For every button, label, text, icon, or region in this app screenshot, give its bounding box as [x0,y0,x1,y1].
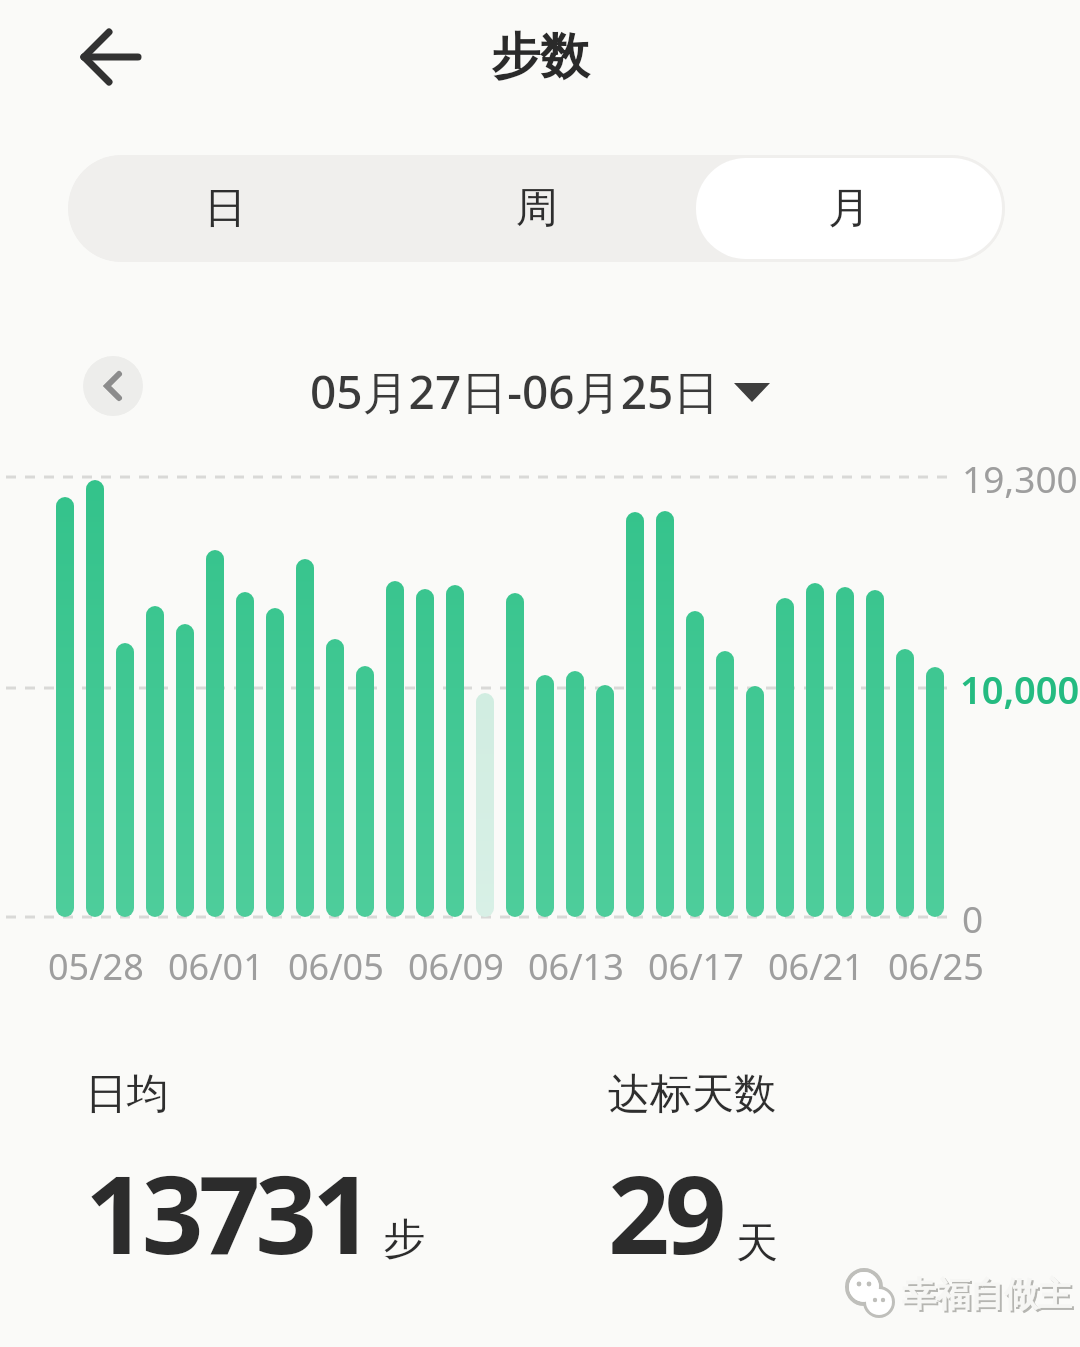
staticText: 06/21 [768,942,864,991]
button[interactable]: 周 [381,155,693,262]
staticText: 0 [962,893,984,943]
staticText: 06/25 [888,942,984,991]
button[interactable] [83,356,143,416]
button[interactable]: 05月27日-06月25日 [0,360,1080,423]
staticText: 13731 [85,1139,369,1286]
staticText: 日均 [85,1068,169,1121]
staticText: 月 [828,182,870,235]
staticText: 05/28 [48,942,144,991]
staticText: 06/01 [168,942,264,991]
staticText: 29 [608,1139,722,1286]
staticText: 06/05 [288,942,384,991]
staticText: 幸福自做主 [902,1273,1072,1316]
staticText: 05月27日-06月25日 [310,360,720,423]
staticText: 天 [736,1217,778,1270]
staticText: 步 [383,1213,425,1266]
staticText: 周 [516,182,558,235]
staticText: 达标天数 [608,1068,776,1121]
staticText: 幸福自做主 [904,1275,1074,1318]
button[interactable] [80,30,140,84]
staticText: 06/09 [408,942,504,991]
staticText: 19,300 [962,453,1078,503]
staticText: 06/17 [648,942,744,991]
staticText: 步数 [0,26,1080,88]
button[interactable]: 月 [696,158,1002,259]
staticText: 日 [204,182,246,235]
button[interactable]: 日 [68,155,381,262]
staticText: 06/13 [528,942,624,991]
staticText: 10,000 [960,663,1080,715]
